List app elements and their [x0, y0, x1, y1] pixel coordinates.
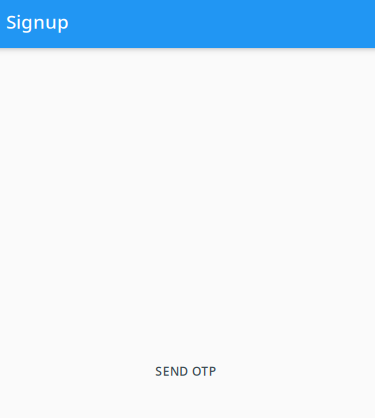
- button[interactable]: SEND OTP: [143, 353, 232, 389]
- staticText: Signup: [6, 9, 69, 34]
- staticText: SEND OTP: [155, 363, 216, 379]
